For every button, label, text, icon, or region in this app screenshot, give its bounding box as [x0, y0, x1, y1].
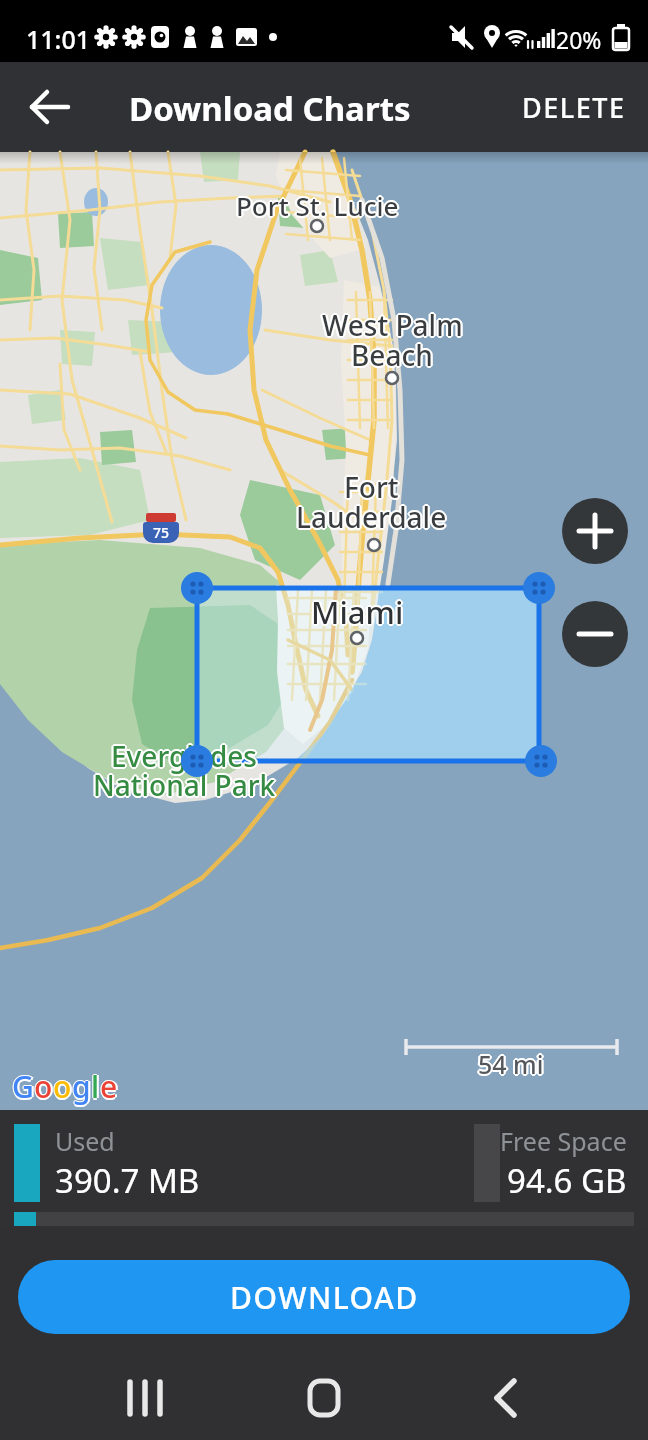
staticText: Everglades — [111, 739, 257, 777]
staticText: e — [100, 1066, 118, 1107]
staticText: West Palm — [321, 305, 462, 343]
staticText: o — [34, 1066, 53, 1107]
staticText: Free Space — [500, 1124, 627, 1158]
staticText: Lauderdale — [297, 497, 448, 535]
staticText: 54 mi — [476, 1047, 542, 1081]
button[interactable] — [18, 75, 82, 139]
button[interactable] — [181, 572, 213, 604]
staticText: Everglades — [111, 735, 257, 773]
staticText: Port St. Lucie — [235, 187, 398, 222]
staticText: Beach — [350, 337, 432, 375]
staticText: Port St. Lucie — [237, 187, 400, 222]
staticText: West Palm — [320, 306, 461, 344]
staticText: National Park — [92, 767, 275, 805]
staticText: g — [74, 1066, 93, 1107]
staticText: Fort — [346, 468, 401, 506]
staticText: Miami — [313, 591, 406, 633]
staticText: l — [91, 1068, 100, 1109]
staticText: West Palm — [322, 304, 463, 342]
staticText: Lauderdale — [295, 499, 446, 537]
staticText: g — [72, 1068, 91, 1109]
staticText: Everglades — [110, 738, 256, 776]
staticText: Lauderdale — [294, 498, 445, 536]
staticText: Port St. Lucie — [238, 188, 401, 223]
staticText: l — [90, 1066, 99, 1107]
button[interactable] — [523, 572, 555, 604]
button[interactable] — [465, 1355, 545, 1435]
staticText: Beach — [352, 337, 434, 375]
staticText: Everglades — [111, 737, 257, 775]
staticText: West Palm — [322, 306, 463, 344]
staticText: 54 mi — [478, 1049, 544, 1083]
staticText: West Palm — [324, 306, 465, 344]
staticText: 54 mi — [477, 1046, 543, 1080]
staticText: Port St. Lucie — [236, 190, 399, 225]
staticText: Port St. Lucie — [236, 186, 399, 221]
staticText: Miami — [310, 592, 403, 634]
staticText: National Park — [91, 766, 274, 804]
staticText: Fort — [344, 470, 399, 508]
staticText: o — [33, 1066, 52, 1107]
staticText: 94.6 GB — [507, 1158, 627, 1203]
staticText: 54 mi — [477, 1048, 543, 1082]
staticText: l — [93, 1066, 102, 1107]
button[interactable] — [562, 601, 628, 667]
staticText: Fort — [345, 467, 400, 505]
button[interactable]: DOWNLOAD — [18, 1260, 630, 1334]
staticText: 54 mi — [479, 1048, 545, 1082]
button[interactable] — [525, 745, 557, 777]
staticText: 54 mi — [480, 1047, 546, 1081]
button[interactable]: DELETE — [514, 81, 634, 134]
staticText: DOWNLOAD — [230, 1277, 419, 1318]
staticText: Everglades — [110, 736, 256, 774]
staticText: g — [72, 1066, 91, 1107]
staticText: e — [99, 1066, 117, 1107]
staticText: Fort — [343, 467, 398, 505]
staticText: Lauderdale — [295, 497, 446, 535]
staticText: Miami — [311, 593, 404, 635]
staticText: o — [53, 1066, 72, 1107]
staticText: o — [53, 1065, 72, 1106]
staticText: 54 mi — [479, 1046, 545, 1080]
staticText: G — [14, 1066, 36, 1107]
staticText: e — [100, 1065, 118, 1106]
staticText: 390.7 MB — [55, 1158, 200, 1203]
staticText: o — [52, 1066, 71, 1107]
staticText: Lauderdale — [298, 498, 449, 536]
staticText: Lauderdale — [297, 499, 448, 537]
staticText: National Park — [93, 768, 276, 806]
button[interactable] — [105, 1355, 185, 1435]
staticText: Port St. Lucie — [236, 188, 399, 223]
staticText: G — [12, 1066, 34, 1107]
staticText: Beach — [351, 336, 433, 374]
staticText: Fort — [345, 469, 400, 507]
staticText: Fort — [344, 468, 399, 506]
staticText: West Palm — [322, 308, 463, 346]
staticText: National Park — [93, 764, 276, 802]
staticText: West Palm — [321, 307, 462, 345]
staticText: Beach — [352, 335, 434, 373]
staticText: Miami — [312, 592, 405, 634]
staticText: Beach — [351, 338, 433, 376]
staticText: Miami — [309, 591, 402, 633]
staticText: G — [12, 1068, 34, 1109]
staticText: Everglades — [113, 737, 259, 775]
staticText: 75 — [153, 523, 170, 542]
staticText: G — [11, 1066, 33, 1107]
staticText: Beach — [353, 336, 435, 374]
staticText: Port St. Lucie — [237, 189, 400, 224]
button[interactable] — [562, 498, 628, 564]
button[interactable] — [284, 1355, 364, 1435]
staticText: g — [71, 1066, 90, 1107]
staticText: National Park — [94, 765, 277, 803]
staticText: Used — [55, 1124, 115, 1158]
staticText: Download Charts — [129, 86, 411, 131]
staticText: DELETE — [522, 89, 626, 126]
staticText: National Park — [93, 766, 276, 804]
staticText: 54 mi — [478, 1047, 544, 1081]
staticText: Port St. Lucie — [235, 189, 398, 224]
staticText: e — [100, 1068, 118, 1109]
button[interactable] — [181, 745, 213, 777]
staticText: National Park — [92, 765, 275, 803]
staticText: Miami — [310, 590, 403, 632]
